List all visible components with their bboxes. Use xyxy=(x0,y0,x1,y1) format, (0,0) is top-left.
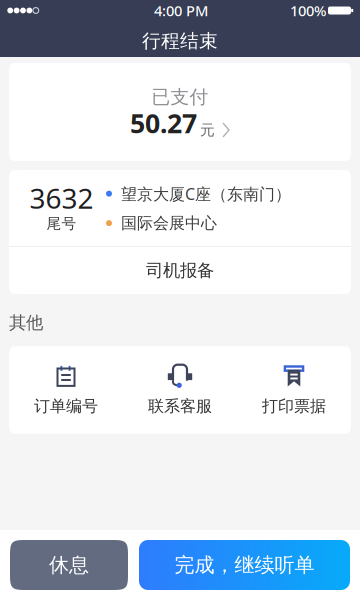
staticText: 已支付 xyxy=(151,85,208,108)
staticText: 4:00 PM xyxy=(154,1,208,20)
button[interactable]: 司机报备 xyxy=(9,247,351,294)
staticText: 国际会展中心 xyxy=(121,213,217,233)
staticText: 其他 xyxy=(9,312,43,333)
staticText: 元 xyxy=(200,121,215,139)
staticText: 休息 xyxy=(49,553,89,577)
staticText: 50.27 xyxy=(130,105,197,141)
button[interactable]: 休息 xyxy=(10,540,128,590)
staticText: 行程结束 xyxy=(142,29,218,52)
button[interactable]: 已支付 xyxy=(9,63,351,161)
staticText: 3632 xyxy=(29,179,93,217)
staticText: 订单编号 xyxy=(34,396,98,416)
staticText: 联系客服 xyxy=(148,396,212,416)
button[interactable]: 完成，继续听单 xyxy=(139,540,350,590)
staticText: 司机报备 xyxy=(146,260,214,281)
staticText: 完成，继续听单 xyxy=(174,553,314,577)
staticText: 打印票据 xyxy=(262,396,326,416)
button[interactable]: 联系客服 xyxy=(123,346,237,434)
button[interactable]: 订单编号 xyxy=(9,346,123,434)
button[interactable]: 打印票据 xyxy=(237,346,351,434)
staticText: 100% xyxy=(290,1,326,20)
staticText: 望京大厦C座（东南门） xyxy=(121,183,291,204)
staticText: 尾号 xyxy=(46,215,76,233)
